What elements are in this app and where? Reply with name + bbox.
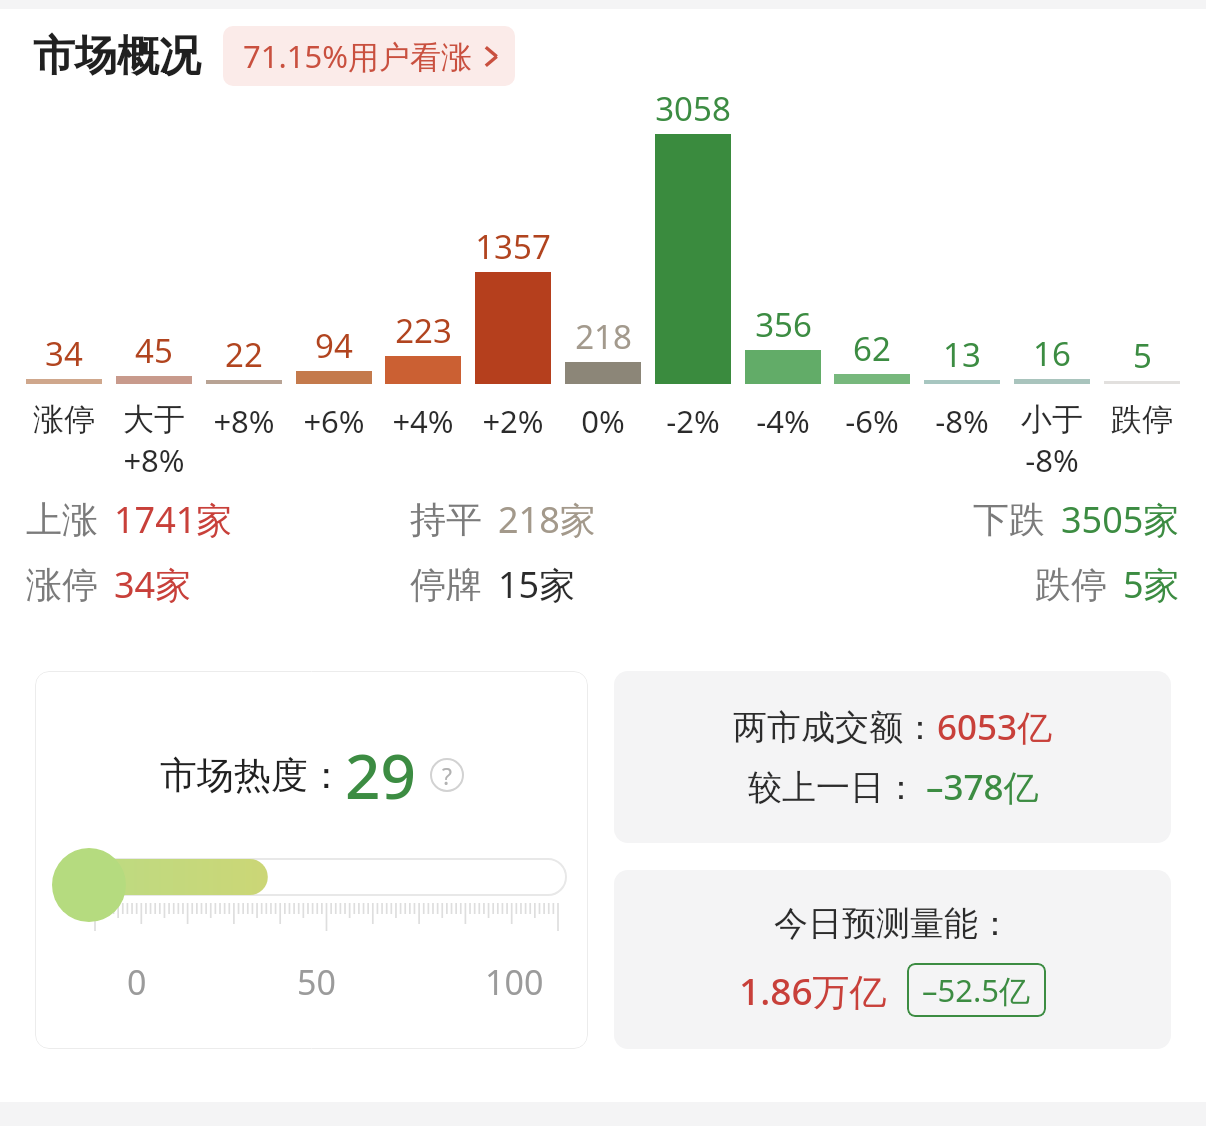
staticText: -2%: [666, 400, 720, 442]
button[interactable]: 94: [292, 323, 376, 384]
staticText: 6053亿: [937, 703, 1053, 751]
staticText: 今日预测量能：: [774, 902, 1012, 945]
button[interactable]: 1357: [471, 224, 555, 384]
button[interactable]: 今日预测量能：: [614, 870, 1171, 1049]
staticText: 45: [135, 328, 173, 373]
staticText: 94: [315, 323, 353, 368]
button[interactable]: 62: [830, 326, 914, 384]
staticText: 较上一日：: [748, 766, 918, 809]
staticText: 3505家: [1061, 495, 1180, 544]
staticText: 1357: [475, 224, 551, 269]
staticText: 13: [943, 332, 981, 377]
staticText: 停牌: [410, 562, 482, 607]
staticText: 下跌: [973, 497, 1045, 542]
staticText: 218家: [498, 495, 596, 544]
staticText: 两市成交额：: [733, 706, 937, 749]
button[interactable]: 34: [22, 331, 106, 384]
button[interactable]: 5: [1100, 333, 1184, 384]
staticText: 市场热度：: [160, 752, 345, 799]
button[interactable]: 223: [381, 308, 465, 384]
staticText: 1.86万亿: [739, 965, 887, 1016]
button[interactable]: 45: [112, 328, 196, 384]
staticText: -8%: [935, 400, 989, 442]
staticText: 大于: [123, 400, 185, 439]
button[interactable]: 218: [561, 314, 645, 384]
staticText: 小于: [1021, 400, 1083, 439]
staticText: 16: [1033, 331, 1071, 376]
staticText: 上涨: [26, 497, 98, 542]
button[interactable]: 16: [1010, 331, 1094, 384]
staticText: 50: [297, 959, 336, 1005]
staticText: +6%: [303, 400, 365, 442]
staticText: +4%: [392, 400, 454, 442]
staticText: 356: [755, 302, 812, 347]
staticText: 5家: [1123, 560, 1180, 609]
button[interactable]: 两市成交额：: [614, 671, 1171, 843]
staticText: 34家: [114, 560, 192, 609]
staticText: 3058: [655, 86, 731, 131]
staticText: 218: [575, 314, 632, 359]
staticText: 0: [127, 959, 147, 1005]
staticText: 涨停: [26, 562, 98, 607]
staticText: –52.5亿: [922, 969, 1031, 1011]
staticText: 71.15%用户看涨: [243, 35, 472, 77]
staticText: 100: [485, 959, 544, 1005]
staticText: 15家: [498, 560, 576, 609]
staticText: 5: [1133, 333, 1152, 378]
button[interactable]: 热度说明: [430, 758, 464, 792]
staticText: 市场概况: [33, 30, 201, 83]
staticText: 22: [225, 332, 263, 377]
staticText: -4%: [756, 400, 810, 442]
button[interactable]: 市场热度：: [35, 671, 588, 1049]
button[interactable]: 3058: [651, 86, 735, 384]
staticText: +8%: [123, 439, 185, 481]
staticText: ?: [442, 760, 452, 791]
staticText: 跌停: [1111, 400, 1173, 439]
staticText: –378亿: [926, 763, 1039, 811]
staticText: 29: [345, 733, 416, 817]
button[interactable]: 22: [202, 332, 286, 384]
staticText: +8%: [213, 400, 275, 442]
staticText: -8%: [1025, 439, 1079, 481]
staticText: -6%: [845, 400, 899, 442]
staticText: 62: [853, 326, 891, 371]
staticText: 34: [45, 331, 83, 376]
staticText: +2%: [482, 400, 544, 442]
staticText: 1741家: [114, 495, 233, 544]
button[interactable]: 13: [920, 332, 1004, 384]
button[interactable]: 356: [741, 302, 825, 384]
button[interactable]: 71.15%用户看涨: [223, 26, 515, 86]
staticText: 跌停: [1035, 562, 1107, 607]
staticText: 223: [395, 308, 452, 353]
staticText: 涨停: [33, 400, 95, 439]
staticText: 0%: [581, 400, 625, 442]
staticText: 持平: [410, 497, 482, 542]
